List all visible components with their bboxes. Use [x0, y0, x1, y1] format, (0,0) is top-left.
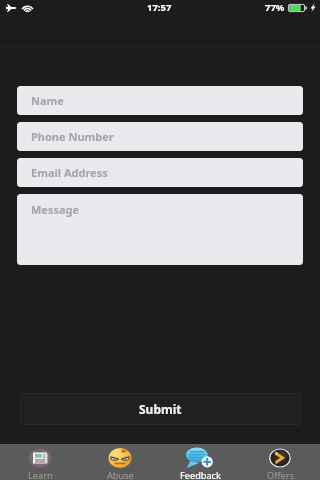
staticText: Name	[31, 93, 64, 108]
staticText: Email Address	[31, 165, 108, 180]
button[interactable]: Submit	[20, 393, 301, 425]
staticText: Learn	[28, 469, 53, 480]
button[interactable]: Abuse	[80, 444, 160, 480]
button[interactable]: Offers	[240, 444, 320, 480]
staticText: Submit	[139, 401, 182, 417]
staticText: Abuse	[107, 469, 134, 480]
button[interactable]: Message	[17, 194, 303, 265]
staticText: Offers	[267, 469, 294, 480]
staticText: Feedback	[180, 469, 221, 480]
staticText: 77%	[265, 1, 285, 14]
staticText: Message	[31, 202, 80, 217]
button[interactable]: Name	[17, 86, 303, 115]
button[interactable]: Learn	[0, 444, 80, 480]
staticText: 17:57	[147, 1, 172, 14]
button[interactable]: Email Address	[17, 158, 303, 187]
button[interactable]: Feedback	[160, 444, 240, 480]
staticText: Phone Number	[31, 129, 114, 144]
button[interactable]: Phone Number	[17, 122, 303, 151]
